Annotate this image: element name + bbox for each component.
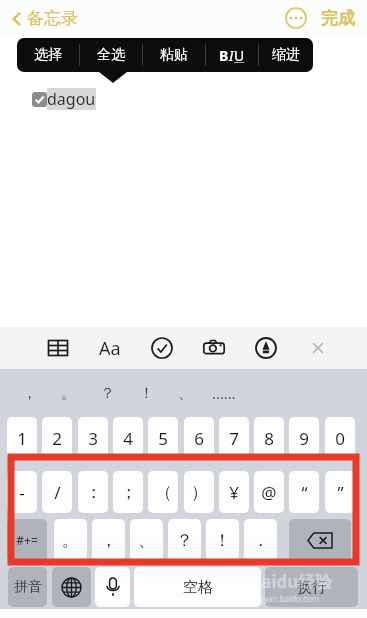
button[interactable]: 选择 <box>17 38 79 72</box>
button[interactable]: 换行 <box>265 567 358 607</box>
staticText: 4 <box>123 427 133 450</box>
button[interactable]: 拼音 <box>8 567 47 607</box>
staticText: dagou <box>47 88 96 110</box>
button[interactable]: Change keyboard <box>52 567 91 607</box>
staticText: ” <box>337 481 344 504</box>
staticText: 8 <box>264 427 274 450</box>
button[interactable]: ， <box>92 519 125 561</box>
staticText: / <box>54 481 61 504</box>
button[interactable]: 6 <box>184 417 214 459</box>
staticText: 1 <box>17 427 27 450</box>
button[interactable]: ¥ <box>219 471 249 513</box>
staticText: 0 <box>335 427 345 450</box>
staticText: 、 <box>138 530 155 551</box>
button[interactable]: 。 <box>49 369 87 417</box>
button[interactable]: 。 <box>54 519 87 561</box>
button[interactable]: More options <box>285 7 307 29</box>
button[interactable]: ？ <box>88 369 126 417</box>
button[interactable]: 1 <box>7 417 37 459</box>
staticText: 5 <box>158 427 168 450</box>
button[interactable]: 完成 <box>321 8 355 29</box>
button[interactable]: 缩进 <box>259 38 313 72</box>
staticText: 2 <box>52 427 62 450</box>
staticText: 3 <box>88 427 98 450</box>
staticText: 完成 <box>321 8 355 29</box>
staticText: I <box>229 46 234 65</box>
button[interactable] <box>32 92 47 107</box>
staticText: ¥ <box>229 481 239 504</box>
staticText: U <box>234 46 245 65</box>
button[interactable]: “ <box>289 471 319 513</box>
button[interactable]: Voice input <box>95 567 130 607</box>
staticText: “ <box>301 481 308 504</box>
staticText: 缩进 <box>272 46 300 64</box>
button[interactable]: ” <box>325 471 355 513</box>
staticText: ？ <box>100 384 115 403</box>
staticText: 。 <box>62 530 79 551</box>
button[interactable]: ： <box>78 471 108 513</box>
button[interactable]: Text format <box>94 332 126 364</box>
staticText: ， <box>22 384 37 403</box>
button[interactable]: 7 <box>219 417 249 459</box>
staticText: ： <box>85 482 102 503</box>
button[interactable]: ， <box>10 369 48 417</box>
button[interactable]: Backspace <box>289 519 351 561</box>
button[interactable]: 备忘录 <box>10 8 78 29</box>
button[interactable]: Table <box>42 332 74 364</box>
staticText: 选择 <box>34 46 62 64</box>
button[interactable]: B <box>206 38 258 72</box>
button[interactable]: 粘贴 <box>143 38 205 72</box>
button[interactable]: 全选 <box>80 38 142 72</box>
staticText: ） <box>191 482 208 503</box>
button[interactable]: ） <box>184 471 214 513</box>
staticText: 粘贴 <box>160 46 188 64</box>
button[interactable]: 、 <box>130 519 163 561</box>
staticText: 全选 <box>97 46 125 64</box>
staticText: 9 <box>299 427 309 450</box>
staticText: 7 <box>229 427 239 450</box>
button[interactable]: 4 <box>113 417 143 459</box>
staticText: 6 <box>194 427 204 450</box>
staticText: - <box>19 481 25 504</box>
staticText: Baidu经验 <box>250 570 333 593</box>
staticText: 、 <box>178 384 193 403</box>
button[interactable]: ． <box>244 519 277 561</box>
staticText: jingyan.baidu.com <box>250 593 320 604</box>
staticText: ！ <box>139 384 154 403</box>
button[interactable]: Checklist <box>146 332 178 364</box>
staticText: B <box>219 46 229 65</box>
button[interactable]: @ <box>254 471 284 513</box>
button[interactable]: ！ <box>206 519 239 561</box>
staticText: 备忘录 <box>27 8 78 29</box>
button[interactable]: - <box>7 471 37 513</box>
button[interactable]: 8 <box>254 417 284 459</box>
staticText: ． <box>252 530 269 551</box>
staticText: Aa <box>99 336 121 361</box>
button[interactable]: （ <box>148 471 178 513</box>
staticText: ？ <box>176 530 193 551</box>
button[interactable]: ； <box>113 471 143 513</box>
button[interactable]: Markup <box>250 332 282 364</box>
button[interactable]: / <box>42 471 72 513</box>
button[interactable]: ？ <box>168 519 201 561</box>
button[interactable]: ！ <box>127 369 165 417</box>
button[interactable]: 空格 <box>134 567 261 607</box>
button[interactable]: …… <box>205 369 243 417</box>
staticText: ， <box>100 530 117 551</box>
staticText: 。 <box>61 384 76 403</box>
button[interactable]: 5 <box>148 417 178 459</box>
button[interactable]: 0 <box>325 417 355 459</box>
button[interactable]: 3 <box>78 417 108 459</box>
button[interactable]: 、 <box>166 369 204 417</box>
staticText: @ <box>261 481 277 504</box>
button[interactable]: 9 <box>289 417 319 459</box>
staticText: …… <box>212 383 236 403</box>
button[interactable]: 2 <box>42 417 72 459</box>
button[interactable]: #+= <box>7 519 47 561</box>
staticText: ； <box>120 482 137 503</box>
staticText: #+= <box>16 532 38 548</box>
button[interactable]: Close keyboard <box>302 332 334 364</box>
button[interactable]: Camera <box>198 332 230 364</box>
staticText: 空格 <box>183 578 213 597</box>
staticText: 换行 <box>297 578 327 597</box>
